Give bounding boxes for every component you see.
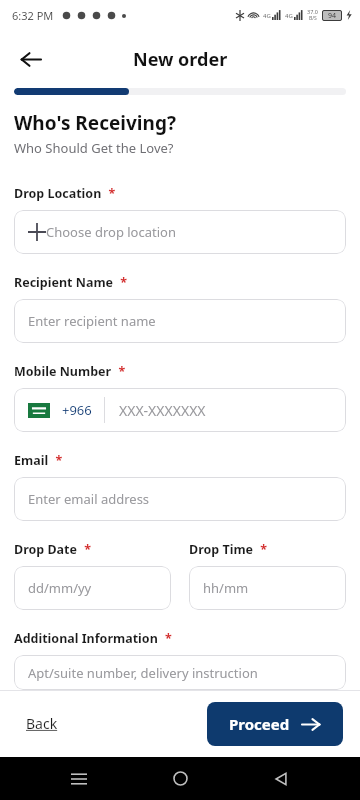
staticText: 4G (285, 12, 293, 20)
button[interactable]: Enter recipient name (14, 299, 346, 343)
button[interactable]: Enter email address (14, 477, 346, 521)
staticText: 94 (328, 11, 337, 21)
staticText: 37.0 (307, 8, 318, 15)
staticText: Enter recipient name (28, 312, 332, 330)
button[interactable]: Proceed (207, 702, 343, 746)
staticText: Back (26, 714, 58, 733)
staticText: Additional Information * (14, 628, 172, 647)
staticText: New order (133, 47, 228, 72)
button[interactable]: Apt/suite number, delivery instruction (14, 655, 346, 690)
staticText: +966 (62, 401, 92, 419)
staticText: Email * (14, 450, 63, 469)
staticText: Recipient Name * (14, 272, 128, 291)
staticText: Drop Location * (14, 183, 116, 202)
button[interactable]: Recents (57, 757, 101, 800)
staticText: 4G (263, 12, 271, 20)
button[interactable]: +966 (14, 388, 346, 432)
staticText: Drop Date * (14, 539, 92, 558)
staticText: Apt/suite number, delivery instruction (28, 664, 332, 682)
staticText: 6:32 PM (12, 8, 54, 23)
staticText: Mobile Number * (14, 361, 126, 380)
staticText: Who's Receiving? (14, 110, 176, 136)
staticText: Enter email address (28, 490, 332, 508)
staticText: B/S (309, 15, 317, 22)
button[interactable]: Back (259, 757, 303, 800)
button[interactable]: dd/mm/yy (14, 566, 171, 610)
button[interactable]: Back (8, 37, 52, 81)
staticText: Proceed (229, 714, 290, 734)
staticText: hh/mm (203, 579, 332, 597)
staticText: Drop Time * (189, 539, 268, 558)
staticText: XXX-XXXXXXX (119, 401, 206, 420)
staticText: dd/mm/yy (28, 579, 157, 597)
button[interactable]: Home (158, 757, 202, 800)
button[interactable]: Back (22, 710, 62, 737)
staticText: Choose drop location (46, 223, 332, 241)
staticText: Who Should Get the Love? (14, 139, 174, 157)
button[interactable]: hh/mm (189, 566, 346, 610)
button[interactable]: Choose drop location (14, 210, 346, 254)
